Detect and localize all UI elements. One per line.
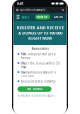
button[interactable]: GET BONUS [17,86,51,92]
button[interactable]: LOG IN [51,14,64,19]
staticText: Make a deposit and get a bonus [21,52,55,60]
staticText: Wager the bonus within 30 days [21,62,60,69]
staticText: Terms and conditions apply [17,94,54,97]
staticText: 9:41 [16,1,23,6]
staticText: LOG IN [53,15,62,19]
staticText: Bonus rules [31,47,48,50]
staticText: GET BONUS [27,87,42,91]
button[interactable]: Menu [15,14,20,20]
staticText: Bonus credited instantly [21,80,55,83]
staticText: Maximum bonus amount is 100 000 [21,71,56,78]
button[interactable]: SIGN UP [35,14,50,19]
staticText: BET [22,14,29,20]
staticText: sportsbook.example [20,8,46,12]
staticText: SIGN UP [37,15,48,19]
staticText: REGISTER AND RECEIVE A BONUS UP TO 100 0… [16,25,63,41]
